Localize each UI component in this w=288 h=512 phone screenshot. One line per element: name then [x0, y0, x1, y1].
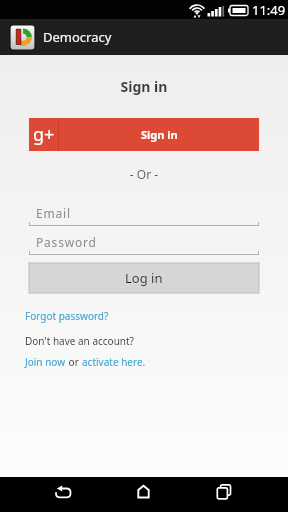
staticText: Sign in: [141, 127, 178, 142]
button[interactable]: Forgot password?: [25, 309, 109, 323]
button[interactable]: [203, 477, 237, 512]
button[interactable]: Join now: [25, 355, 66, 369]
button[interactable]: Democracy: [0, 19, 288, 55]
staticText: Democracy: [43, 28, 112, 46]
button[interactable]: Log in: [29, 263, 259, 293]
staticText: Password: [36, 234, 97, 250]
staticText: Don't have an account?: [25, 334, 134, 348]
button[interactable]: activate here.: [82, 355, 146, 369]
staticText: Email: [36, 205, 71, 221]
staticText: - Or -: [0, 166, 288, 182]
staticText: Sign in: [0, 77, 288, 96]
button[interactable]: [125, 477, 159, 512]
button[interactable]: g+: [29, 118, 259, 151]
staticText: g+: [33, 122, 55, 147]
button[interactable]: Password: [29, 233, 259, 255]
staticText: Log in: [125, 269, 163, 287]
button[interactable]: [47, 477, 81, 512]
button[interactable]: Email: [29, 204, 259, 226]
staticText: or: [66, 355, 82, 369]
staticText: 11:49: [252, 1, 286, 19]
